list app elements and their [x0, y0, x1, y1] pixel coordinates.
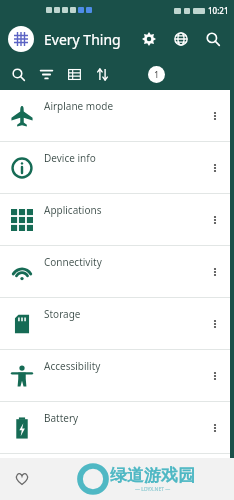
button[interactable]: Sort — [88, 60, 116, 88]
button[interactable]: Connectivity — [0, 246, 230, 297]
button[interactable]: More options for Airplane mode — [200, 90, 230, 141]
button[interactable]: Airplane mode — [0, 90, 230, 141]
button[interactable]: More options for Accessibility — [200, 350, 230, 401]
staticText: Airplane mode — [44, 99, 114, 113]
button[interactable]: App logo — [8, 26, 34, 52]
button[interactable]: Battery — [0, 402, 230, 453]
button[interactable]: Storage — [0, 298, 230, 349]
staticText: 绿道游戏园 — [110, 465, 195, 486]
button[interactable]: More options for Storage — [200, 298, 230, 349]
staticText: Battery — [44, 411, 79, 425]
staticText: Connectivity — [44, 255, 102, 269]
button[interactable]: Settings — [136, 26, 162, 52]
button[interactable]: Favorites — [8, 465, 36, 493]
button[interactable]: More options for Applications — [200, 194, 230, 245]
button[interactable]: Page 1 — [148, 66, 165, 83]
staticText: Accessibility — [44, 359, 101, 373]
staticText: Storage — [44, 307, 81, 321]
button[interactable]: Accessibility — [0, 350, 230, 401]
button[interactable]: More options for Device info — [200, 142, 230, 193]
button[interactable]: Search — [4, 60, 32, 88]
button[interactable]: Device info — [0, 142, 230, 193]
staticText: Applications — [44, 203, 102, 217]
button[interactable]: Applications — [0, 194, 230, 245]
button[interactable]: Filter — [32, 60, 60, 88]
button[interactable]: More options for Connectivity — [200, 246, 230, 297]
button[interactable]: Search — [200, 26, 226, 52]
button[interactable]: View mode — [60, 60, 88, 88]
button[interactable]: More options for Battery — [200, 402, 230, 453]
staticText: 10:21 — [208, 5, 229, 16]
staticText: Every Thing — [44, 30, 121, 49]
staticText: 1 — [154, 69, 159, 80]
button[interactable]: Language — [168, 26, 194, 52]
staticText: — LDYX.NET — — [135, 486, 171, 493]
staticText: Device info — [44, 151, 96, 165]
